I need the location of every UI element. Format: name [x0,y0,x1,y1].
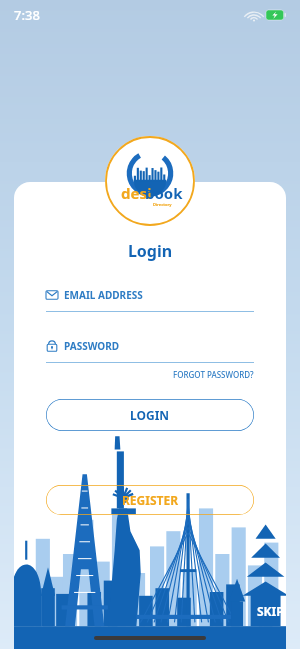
staticText: Login [0,240,300,262]
staticText: REGISTER [122,492,179,508]
staticText: 7:38 [14,6,40,24]
staticText: SKIP [257,603,284,619]
staticText: desi [121,183,152,203]
staticText: book [145,183,183,203]
staticText: Directory [153,202,172,207]
button[interactable]: EMAIL ADDRESS [46,288,254,312]
button[interactable]: PASSWORD [46,339,254,363]
button[interactable]: LOGIN [46,399,254,431]
button[interactable]: FORGOT PASSWORD? [173,369,254,380]
staticText: PASSWORD [64,339,120,353]
staticText: LOGIN [130,407,170,423]
button[interactable]: REGISTER [46,485,254,515]
button[interactable]: SKIP [257,603,284,619]
staticText: EMAIL ADDRESS [64,288,143,302]
